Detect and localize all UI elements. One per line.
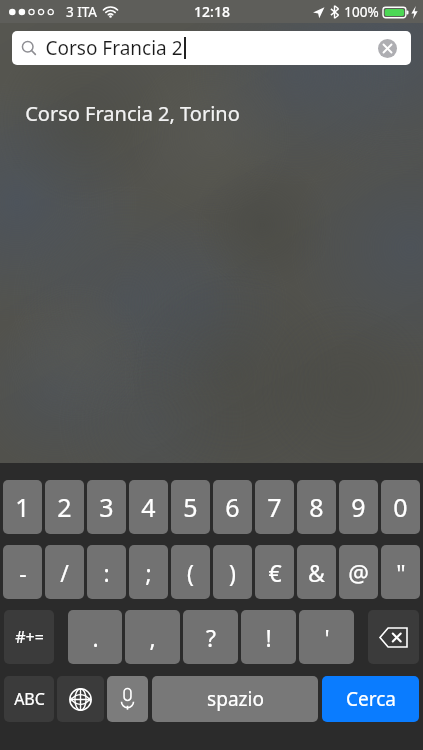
staticText: 8 [309,490,324,524]
button[interactable]: ? [183,610,238,664]
button[interactable]: . [68,610,122,664]
button[interactable]: ( [171,545,210,599]
staticText: 6 [225,490,240,524]
button[interactable]: Change keyboard language [57,676,104,722]
staticText: 3 ITA [66,3,97,21]
staticText: " [396,557,406,588]
button[interactable]: ' [299,610,354,664]
staticText: 5 [183,490,198,524]
staticText: € [268,557,282,588]
button[interactable]: ABC [4,676,54,722]
button[interactable]: : [87,545,126,599]
staticText: #+= [15,626,44,648]
button[interactable]: 5 [171,480,210,534]
staticText: @ [348,557,369,588]
button[interactable]: ) [213,545,252,599]
staticText: . [92,622,99,653]
staticText: ABC [14,688,45,710]
staticText: : [103,557,110,588]
staticText: ! [265,622,272,653]
button[interactable]: Corso Francia 2 [12,31,411,65]
staticText: / [60,557,69,588]
staticText: ' [324,622,330,653]
button[interactable]: Backspace [368,610,419,664]
staticText: ) [229,557,236,588]
staticText: 12:18 [194,2,230,21]
staticText: ; [145,557,152,588]
button[interactable]: 4 [129,480,168,534]
button[interactable]: 8 [297,480,336,534]
button[interactable]: 1 [3,480,42,534]
staticText: 3 [99,490,114,524]
button[interactable]: Clear text [372,33,402,63]
staticText: Corso Francia 2, Torino [25,100,240,127]
staticText: 1 [15,490,30,524]
button[interactable]: / [45,545,84,599]
staticText: Cerca [346,686,396,712]
button[interactable]: #+= [4,610,54,664]
button[interactable]: & [297,545,336,599]
staticText: 0 [393,490,408,524]
staticText: 100% [344,3,379,21]
button[interactable]: " [381,545,420,599]
staticText: spazio [207,686,264,712]
staticText: , [149,622,156,653]
button[interactable]: 9 [339,480,378,534]
staticText: 2 [57,490,72,524]
button[interactable]: 3 [87,480,126,534]
button[interactable]: 6 [213,480,252,534]
button[interactable]: Cerca [322,676,419,722]
staticText: ? [206,622,216,653]
staticText: ( [187,557,194,588]
staticText: 7 [267,490,282,524]
staticText: Corso Francia 2 [45,35,183,61]
button[interactable]: € [255,545,294,599]
button[interactable]: , [125,610,180,664]
button[interactable]: spazio [152,676,318,722]
button[interactable]: 0 [381,480,420,534]
button[interactable]: @ [339,545,378,599]
button[interactable]: 2 [45,480,84,534]
button[interactable]: ; [129,545,168,599]
staticText: - [19,557,27,588]
button[interactable]: Corso Francia 2, Torino [0,95,423,131]
button[interactable]: ! [241,610,296,664]
button[interactable]: - [3,545,42,599]
staticText: & [308,557,325,588]
staticText: 4 [141,490,156,524]
button[interactable]: 7 [255,480,294,534]
staticText: 9 [351,490,366,524]
button[interactable]: Voice input [107,676,148,722]
